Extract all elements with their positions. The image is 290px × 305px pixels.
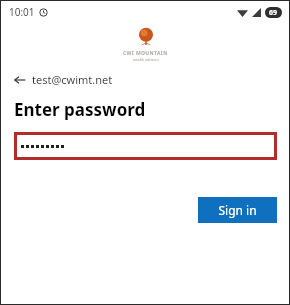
staticText: test@cwimt.net [32,72,113,87]
button[interactable] [14,132,277,160]
button[interactable]: Back [14,70,290,89]
staticText: wealth advisors [133,57,159,62]
staticText: Sign in [218,202,257,218]
other: Back [14,74,26,86]
staticText: CWI MOUNTAIN [123,50,168,57]
button[interactable]: Sign in [198,197,277,223]
staticText: 69 [269,8,278,18]
staticText: Enter password [14,98,146,121]
staticText: 10:01 [9,5,35,19]
